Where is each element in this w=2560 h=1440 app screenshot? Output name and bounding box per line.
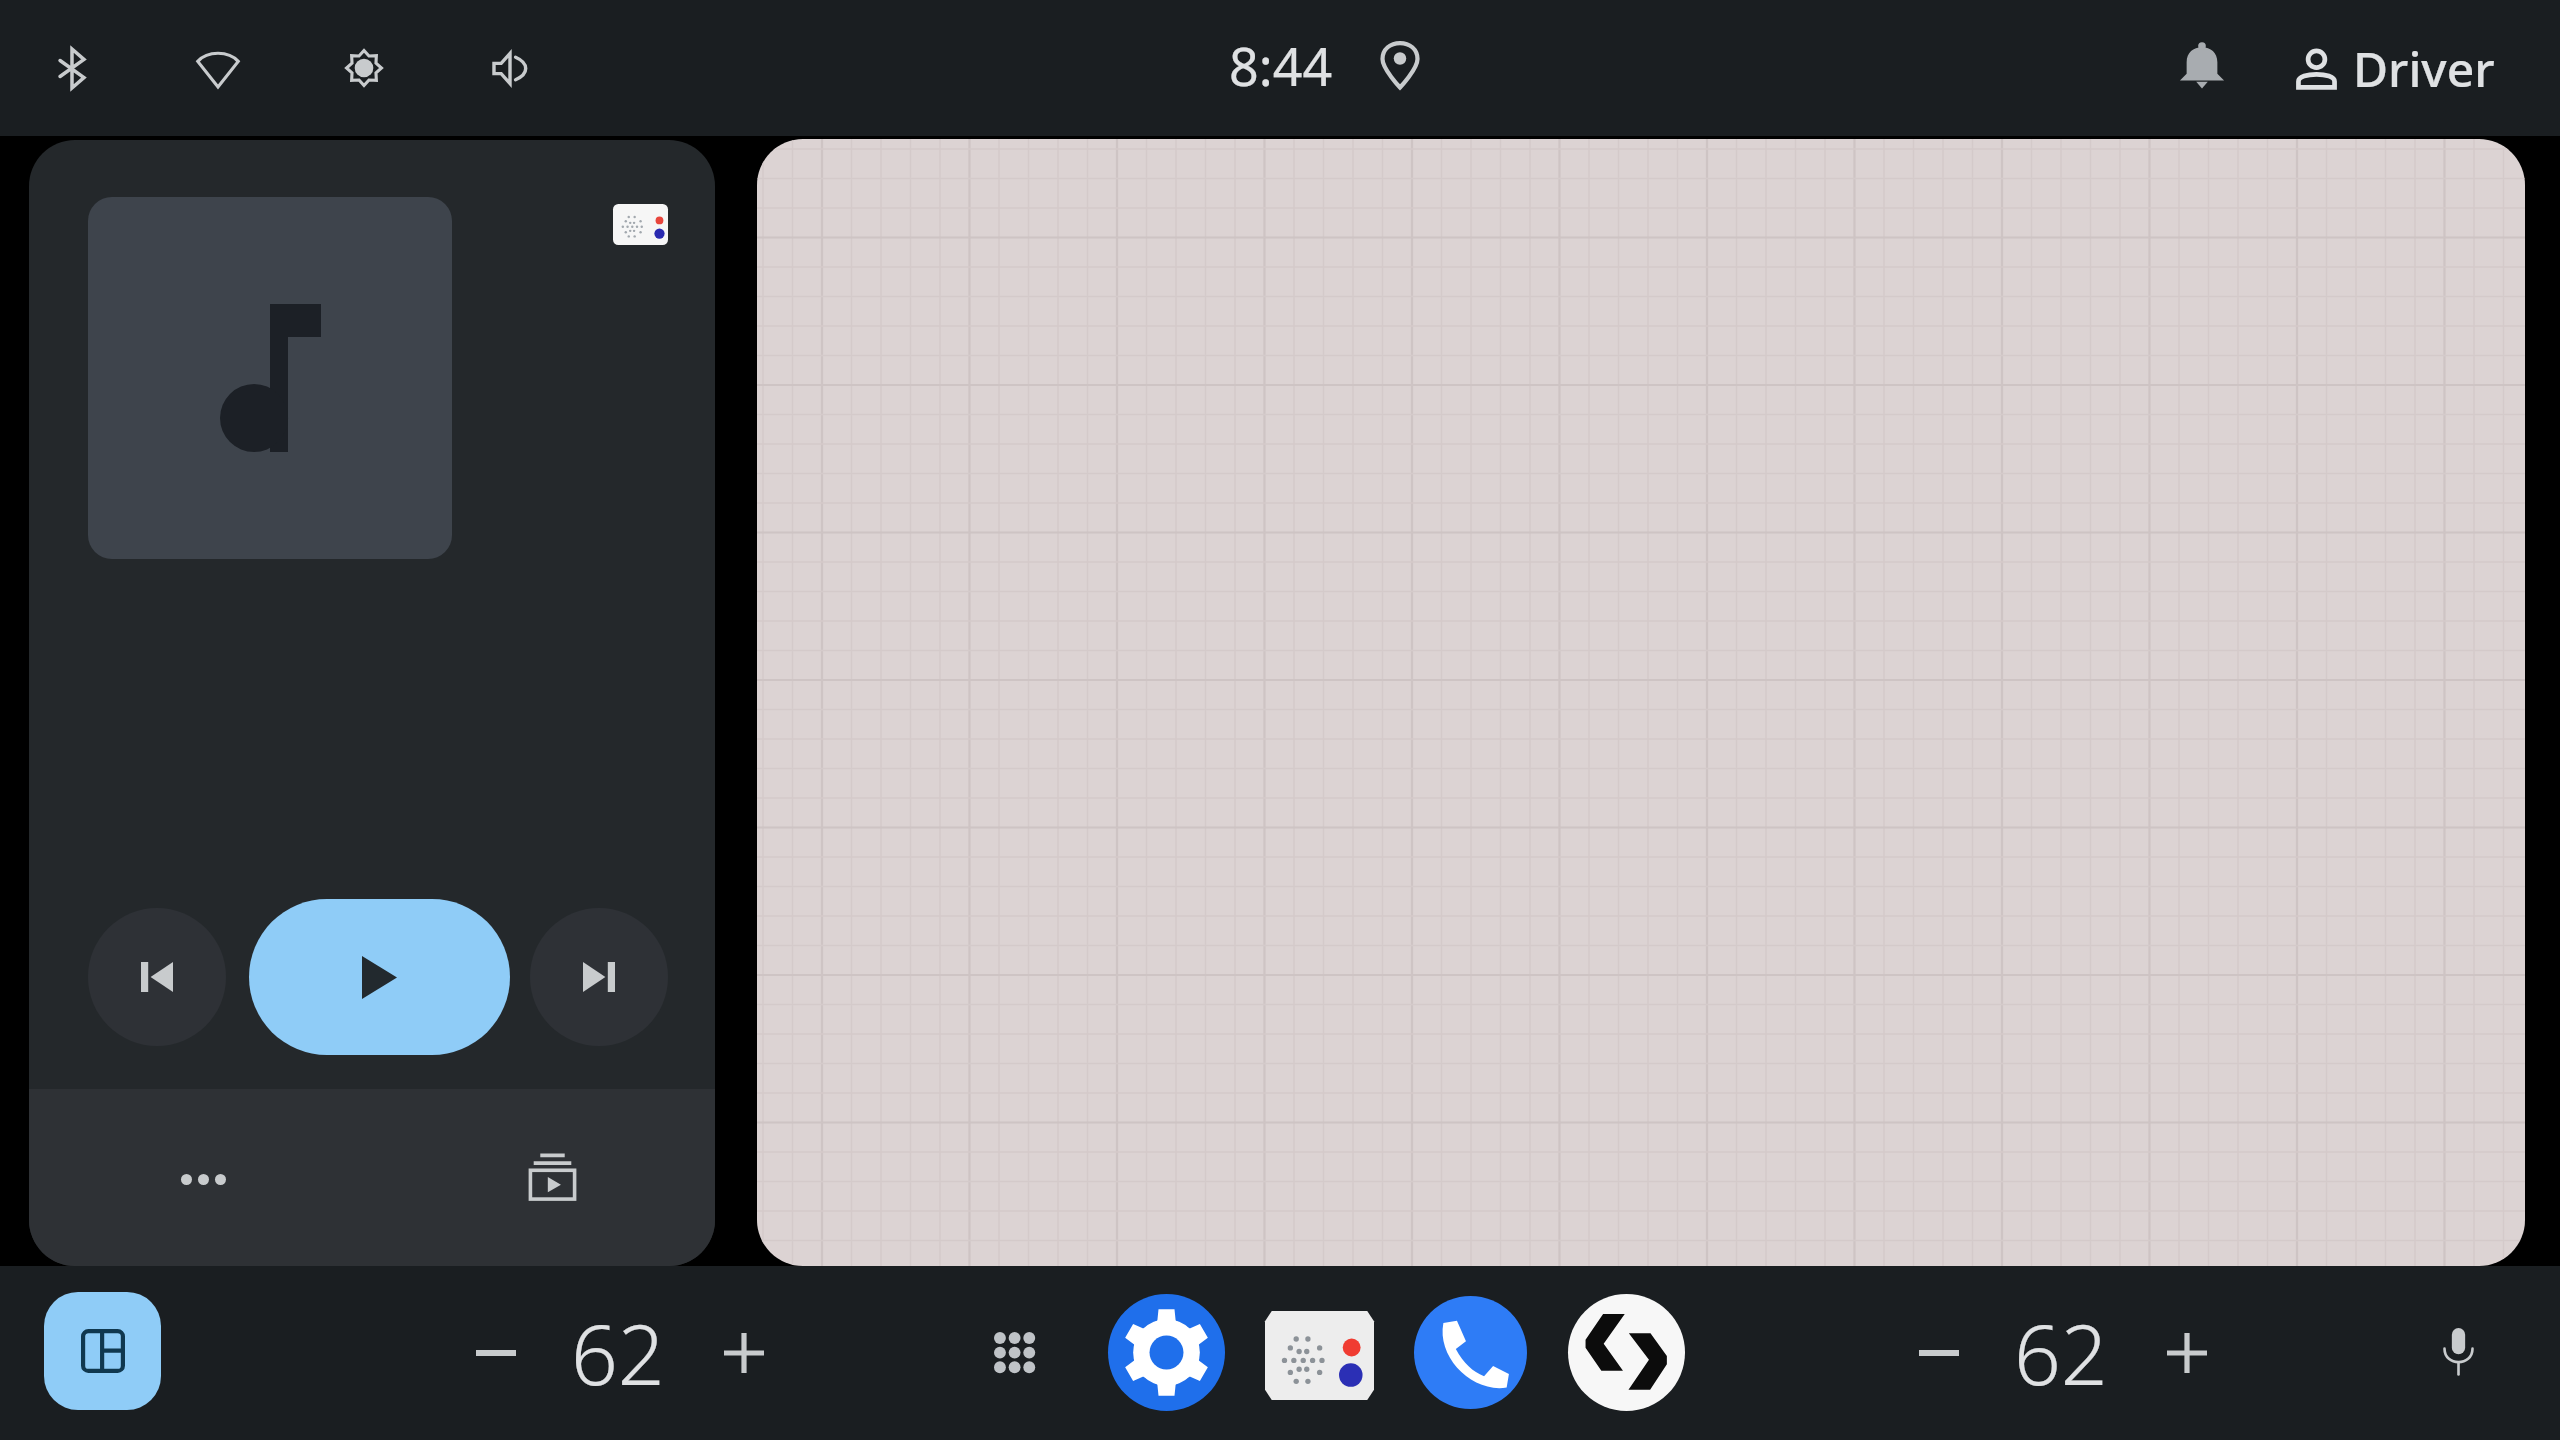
button[interactable]: Previous track [88, 908, 226, 1046]
staticText: 62 [2014, 1297, 2108, 1409]
button[interactable]: Queue [512, 1137, 592, 1217]
button[interactable]: Media app [1550, 1276, 1703, 1429]
button[interactable]: All apps [976, 1314, 1053, 1391]
button[interactable]: Split screen [44, 1292, 161, 1410]
button[interactable]: Driver [2296, 22, 2495, 114]
button[interactable]: Google Assistant [613, 204, 668, 245]
button[interactable]: 62 [2001, 1293, 2121, 1413]
button[interactable]: Bluetooth [39, 29, 105, 108]
button[interactable]: Navigation map [757, 139, 2525, 1266]
button[interactable]: Voice assistant [2421, 1308, 2496, 1395]
button[interactable]: Play [249, 899, 510, 1055]
button[interactable]: Volume [472, 32, 548, 105]
button[interactable]: Google Assistant [1247, 1293, 1392, 1418]
button[interactable]: Increase temperature [700, 1313, 788, 1393]
staticText: 62 [571, 1297, 665, 1409]
button[interactable]: Notifications [2178, 42, 2226, 90]
button[interactable]: 62 [558, 1293, 678, 1413]
button[interactable]: Decrease temperature [452, 1313, 540, 1393]
button[interactable]: Wifi [176, 30, 260, 108]
button[interactable]: Next track [530, 908, 668, 1046]
button[interactable]: Decrease temperature [1895, 1313, 1983, 1393]
staticText: Driver [2353, 36, 2495, 101]
button[interactable]: Increase temperature [2143, 1313, 2231, 1393]
button[interactable]: Location [1375, 40, 1425, 90]
staticText: 8:44 [1229, 30, 1333, 101]
button[interactable]: More options [163, 1139, 243, 1219]
button[interactable]: Brightness [325, 29, 403, 107]
button[interactable]: Album art [88, 197, 452, 559]
button[interactable]: Phone [1396, 1278, 1545, 1427]
button[interactable]: Settings [1090, 1276, 1243, 1429]
